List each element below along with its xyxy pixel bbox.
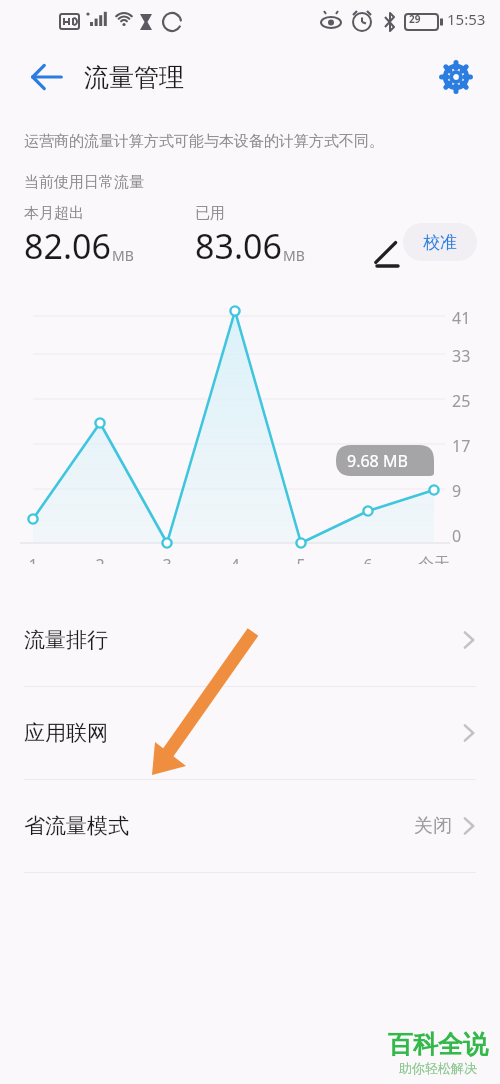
staticText: 已用 <box>195 204 225 223</box>
staticText: 3 <box>155 554 179 564</box>
staticText: 17 <box>452 435 471 457</box>
staticText: 当前使用日常流量 <box>24 173 144 192</box>
staticText: 25 <box>452 390 471 412</box>
staticText: 流量管理 <box>84 62 184 93</box>
staticText: 33 <box>452 345 471 367</box>
staticText: 本月超出 <box>24 204 84 223</box>
staticText: 运营商的流量计算方式可能与本设备的计算方式不同。 <box>24 132 384 151</box>
staticText: 4 <box>223 554 247 564</box>
button[interactable]: 应用联网 <box>0 687 500 779</box>
button[interactable]: 流量排行 <box>0 594 500 686</box>
button[interactable]: Back <box>22 52 72 102</box>
button[interactable]: 省流量模式 <box>0 780 500 872</box>
staticText: 应用联网 <box>24 720 108 746</box>
staticText: 流量排行 <box>24 627 108 653</box>
staticText: 省流量模式 <box>24 813 129 839</box>
staticText: 百科全说 <box>388 1029 488 1060</box>
staticText: MB <box>283 246 305 265</box>
staticText: 9 <box>452 480 462 502</box>
staticText: 今天 <box>412 554 456 564</box>
staticText: 0 <box>452 525 462 547</box>
staticText: 29 <box>409 12 421 26</box>
staticText: 1 <box>21 554 45 564</box>
staticText: 9.68 MB <box>347 450 408 472</box>
staticText: 6 <box>356 554 380 564</box>
staticText: 82.06 <box>24 223 111 269</box>
staticText: 15:53 <box>447 9 486 29</box>
staticText: 校准 <box>423 232 457 253</box>
staticText: 关闭 <box>414 814 452 838</box>
staticText: 助你轻松解决 <box>399 1060 477 1076</box>
staticText: 41 <box>452 307 471 329</box>
button[interactable]: 校准 <box>403 223 477 261</box>
button[interactable]: Settings <box>432 53 480 101</box>
staticText: 2 <box>88 554 112 564</box>
staticText: 83.06 <box>195 223 282 269</box>
button[interactable]: Edit <box>366 234 406 274</box>
staticText: 5 <box>289 554 313 564</box>
staticText: MB <box>112 246 134 265</box>
